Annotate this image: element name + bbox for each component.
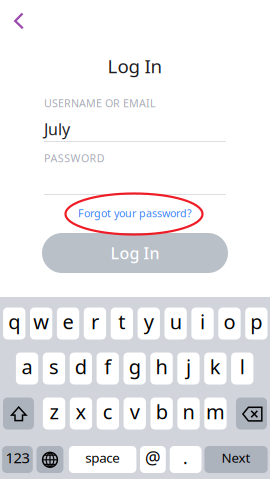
staticText: j — [186, 353, 191, 380]
staticText: u — [170, 308, 182, 335]
button[interactable]: c — [97, 397, 119, 429]
staticText: q — [8, 308, 20, 335]
staticText: Next — [222, 449, 251, 466]
staticText: f — [104, 353, 111, 380]
staticText: 123 — [5, 448, 29, 467]
staticText: x — [75, 398, 86, 425]
button[interactable]: r — [84, 307, 106, 339]
staticText: s — [49, 353, 59, 380]
button[interactable]: t — [111, 307, 133, 339]
button[interactable]: s — [43, 352, 65, 384]
staticText: Log In — [110, 242, 159, 264]
button[interactable]: m — [204, 397, 227, 429]
button[interactable]: z — [43, 397, 65, 429]
button[interactable]: h — [150, 352, 173, 384]
staticText: m — [206, 398, 225, 425]
button[interactable]: @ — [140, 446, 166, 473]
staticText: USERNAME OR EMAIL — [44, 96, 156, 110]
staticText: p — [250, 308, 262, 335]
button[interactable]: x — [70, 397, 92, 429]
staticText: y — [144, 308, 154, 335]
staticText: n — [183, 398, 195, 425]
staticText: o — [223, 308, 235, 335]
staticText: b — [156, 398, 168, 425]
button[interactable]: v — [124, 397, 146, 429]
button[interactable]: Log In — [42, 233, 228, 273]
staticText: k — [210, 353, 221, 380]
button[interactable]: space — [69, 446, 136, 473]
staticText: z — [49, 398, 58, 425]
staticText: l — [240, 353, 245, 380]
staticText: Forgot your password? — [78, 206, 192, 220]
button[interactable]: n — [177, 397, 200, 429]
button[interactable]: k — [204, 352, 226, 384]
staticText: r — [91, 308, 99, 335]
button[interactable]: e — [57, 307, 79, 339]
staticText: c — [103, 398, 113, 425]
button[interactable]: w — [30, 307, 52, 339]
staticText: d — [75, 353, 87, 380]
button[interactable]: y — [138, 307, 160, 339]
button[interactable]: Delete — [236, 397, 267, 429]
button[interactable]: i — [191, 307, 214, 339]
button[interactable]: a — [16, 352, 38, 384]
staticText: space — [85, 449, 120, 466]
staticText: . — [183, 446, 188, 469]
button[interactable]: j — [177, 352, 200, 384]
staticText: Log In — [107, 54, 162, 78]
button[interactable]: f — [97, 352, 119, 384]
staticText: v — [130, 398, 140, 425]
button[interactable]: Next — [204, 446, 268, 473]
staticText: @ — [145, 446, 161, 469]
button[interactable]: 123 — [2, 446, 33, 473]
button[interactable]: q — [3, 307, 25, 339]
staticText: e — [62, 308, 73, 335]
staticText: w — [33, 308, 49, 335]
button[interactable]: g — [123, 352, 146, 384]
staticText: g — [129, 353, 141, 380]
staticText: July — [44, 118, 70, 140]
button[interactable]: b — [150, 397, 173, 429]
button[interactable]: Shift — [3, 397, 34, 429]
staticText: i — [200, 308, 205, 335]
button[interactable]: . — [170, 446, 201, 473]
button[interactable]: u — [164, 307, 187, 339]
button[interactable]: d — [70, 352, 92, 384]
staticText: t — [118, 308, 125, 335]
button[interactable]: Back — [0, 0, 44, 44]
staticText: h — [156, 353, 168, 380]
button[interactable]: l — [231, 352, 253, 384]
button[interactable]: o — [218, 307, 241, 339]
button[interactable]: Forgot your password? — [0, 204, 270, 222]
button[interactable]: Switch keyboard — [36, 446, 63, 473]
staticText: PASSWORD — [44, 151, 105, 165]
button[interactable]: p — [245, 307, 267, 339]
staticText: a — [22, 353, 33, 380]
